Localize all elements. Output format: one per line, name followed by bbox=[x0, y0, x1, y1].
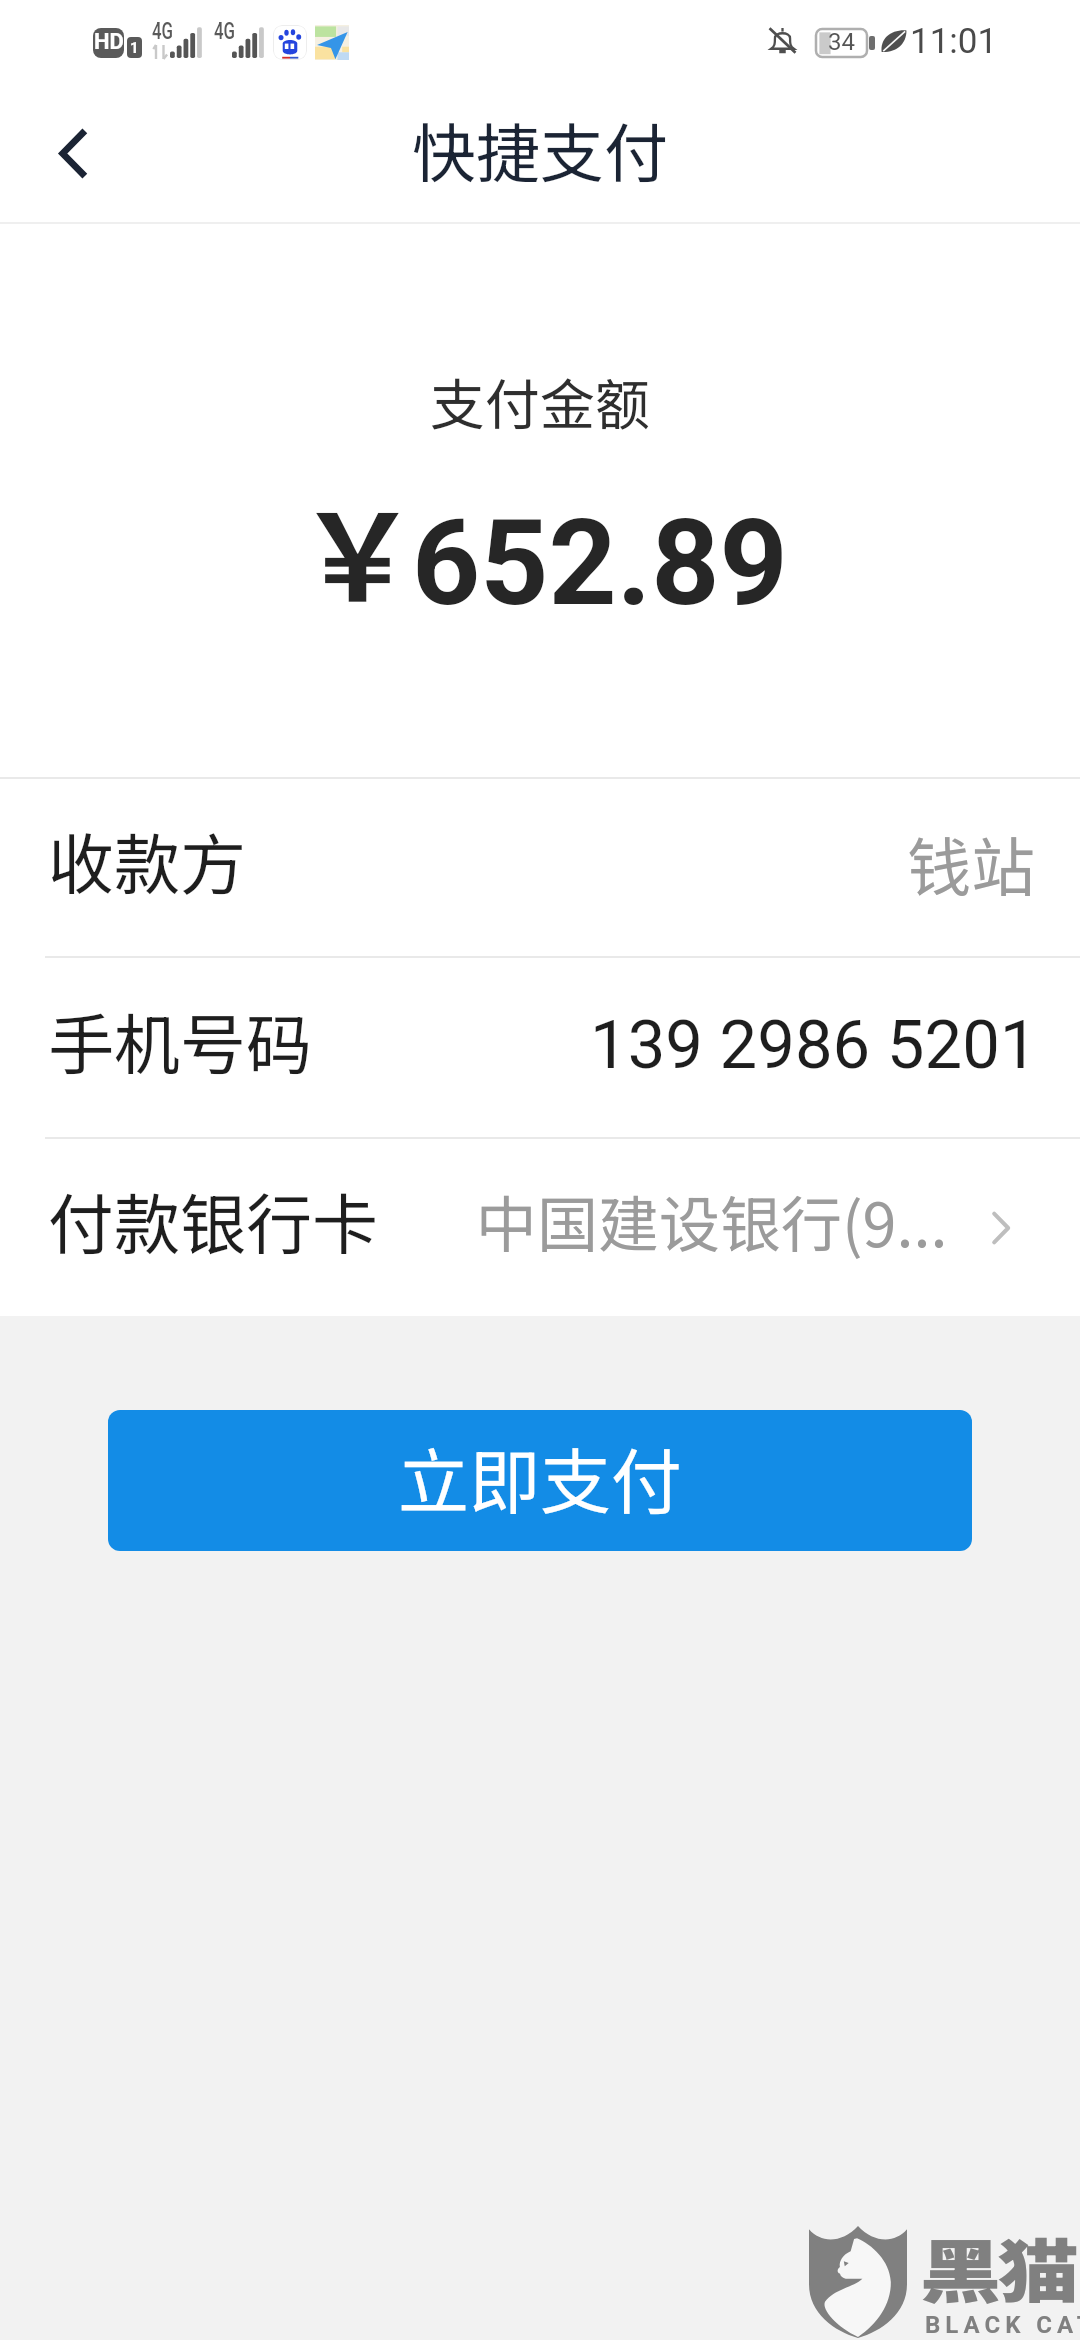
staticText: 1 bbox=[130, 39, 139, 57]
staticText: 支付金额 bbox=[0, 361, 1080, 441]
staticText: 中国建设银行(9... bbox=[476, 1176, 948, 1264]
staticText: 手机号码 bbox=[48, 992, 312, 1088]
staticText: 快捷支付 bbox=[412, 103, 668, 196]
staticText: 付款银行卡 bbox=[48, 1172, 378, 1268]
staticText: 立即支付 bbox=[398, 1426, 683, 1529]
staticText: 4G bbox=[214, 17, 235, 45]
button[interactable]: 付款银行卡 bbox=[0, 1139, 1080, 1316]
staticText: 猫 bbox=[998, 2217, 1079, 2317]
staticText: 黑 bbox=[920, 2217, 1001, 2317]
staticText: ￥ bbox=[297, 462, 419, 637]
staticText: 652.89 bbox=[412, 494, 788, 633]
staticText: HD bbox=[94, 29, 124, 55]
button[interactable]: Back bbox=[16, 94, 126, 204]
button[interactable]: 立即支付 bbox=[108, 1410, 972, 1551]
staticText: 4G bbox=[152, 17, 173, 45]
staticText: 34 bbox=[828, 28, 855, 56]
staticText: 11:01 bbox=[910, 21, 998, 62]
staticText: 139 2986 5201 bbox=[590, 1006, 1038, 1085]
staticText: BLACK CAT bbox=[925, 2311, 1080, 2339]
button[interactable]: 手机号码 bbox=[0, 958, 1080, 1137]
staticText: 收款方 bbox=[48, 812, 246, 908]
button[interactable]: 收款方 bbox=[0, 779, 1080, 956]
staticText: 钱站 bbox=[907, 817, 1035, 910]
